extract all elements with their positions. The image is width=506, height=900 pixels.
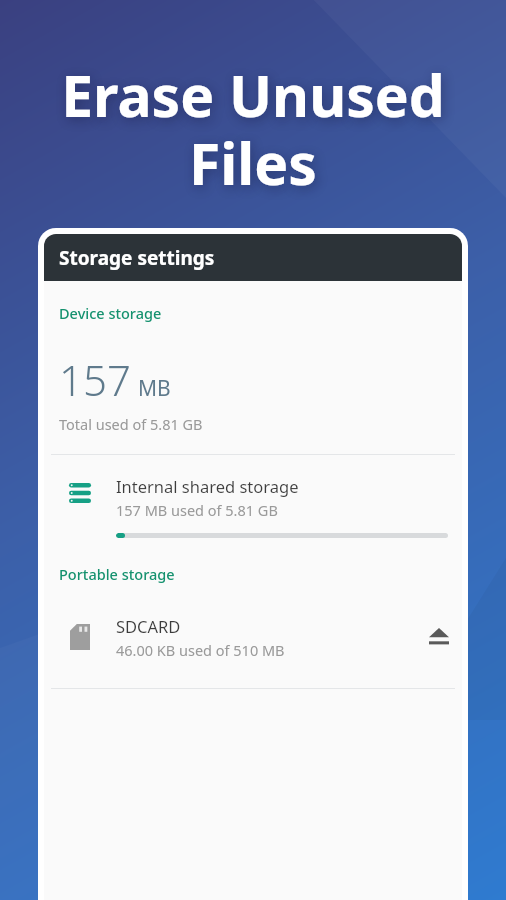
button[interactable]: Storage settings	[44, 234, 462, 281]
staticText: Portable storage	[59, 564, 175, 584]
staticText: SDCARD	[116, 615, 181, 637]
button[interactable]: Eject SD card	[416, 614, 462, 660]
staticText: 157 MB used of 5.81 GB	[116, 500, 278, 520]
staticText: MB	[138, 374, 171, 403]
staticText: 46.00 KB used of 510 MB	[116, 640, 285, 660]
button[interactable]: Internal shared storage	[44, 455, 462, 554]
staticText: Total used of 5.81 GB	[59, 414, 203, 434]
staticText: 157	[59, 351, 131, 408]
button[interactable]: SDCARD	[44, 608, 462, 666]
staticText: Storage settings	[59, 245, 215, 271]
staticText: Erase Unused Files	[14, 56, 492, 202]
staticText: Internal shared storage	[116, 475, 299, 497]
staticText: Device storage	[59, 303, 162, 323]
